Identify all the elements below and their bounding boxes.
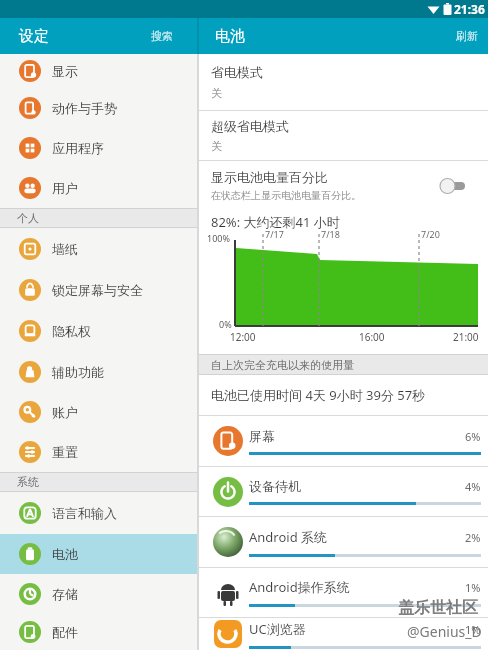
staticText: 省电模式 <box>211 64 263 80</box>
button[interactable]: 墙纸 <box>0 228 197 269</box>
staticText: 墙纸 <box>52 241 78 257</box>
staticText: 2% <box>465 530 481 545</box>
staticText: 自上次完全充电以来的使用量 <box>211 358 354 372</box>
staticText: 16:00 <box>359 330 385 344</box>
button[interactable]: 应用程序 <box>0 128 197 168</box>
staticText: 4% <box>465 479 481 494</box>
staticText: 电池 <box>52 546 78 562</box>
button[interactable]: 动作与手势 <box>0 88 197 128</box>
staticText: 在状态栏上显示电池电量百分比。 <box>211 189 361 202</box>
staticText: 1% <box>465 622 481 637</box>
staticText: 重置 <box>52 444 78 460</box>
button[interactable]: 超级省电模式 <box>199 111 488 160</box>
button[interactable]: 显示电池电量百分比 <box>199 161 488 210</box>
staticText: 7/18 <box>321 228 340 240</box>
button[interactable]: 隐私权 <box>0 310 197 351</box>
staticText: 系统 <box>17 475 39 489</box>
staticText: 电池已使用时间 4天 9小时 39分 57秒 <box>211 386 426 404</box>
button[interactable]: UC浏览器 <box>199 617 488 650</box>
button[interactable]: 语言和输入 <box>0 492 197 534</box>
button[interactable]: 屏幕 <box>199 415 488 466</box>
staticText: 7/20 <box>421 228 440 240</box>
staticText: 显示 <box>52 63 78 79</box>
staticText: Android 系统 <box>249 528 328 546</box>
staticText: 21:36 <box>454 1 485 17</box>
staticText: 个人 <box>17 211 39 225</box>
button[interactable]: 配件 <box>0 614 197 650</box>
button[interactable]: 设备待机 <box>199 466 488 516</box>
button[interactable]: 设定 <box>0 18 197 54</box>
button[interactable]: Android操作系统 <box>199 567 488 617</box>
staticText: 搜索 <box>151 29 173 43</box>
staticText: 账户 <box>52 404 78 420</box>
staticText: 6% <box>465 429 481 444</box>
button[interactable]: 电池 <box>0 534 197 574</box>
button[interactable]: 存储 <box>0 574 197 614</box>
staticText: 100% <box>207 232 230 244</box>
button[interactable]: 账户 <box>0 392 197 432</box>
staticText: 屏幕 <box>249 428 275 444</box>
staticText: 存储 <box>52 586 78 602</box>
staticText: 锁定屏幕与安全 <box>52 282 143 298</box>
staticText: 语言和输入 <box>52 505 117 521</box>
button[interactable]: 锁定屏幕与安全 <box>0 269 197 310</box>
staticText: 盖乐世社区 <box>398 598 478 618</box>
staticText: 超级省电模式 <box>211 118 289 134</box>
staticText: 82%: 大约还剩41 小时 <box>211 213 340 231</box>
button[interactable]: 省电模式 <box>199 54 488 110</box>
staticText: 0% <box>219 318 232 330</box>
staticText: 配件 <box>52 624 78 640</box>
staticText: @Genius_D <box>407 622 482 641</box>
staticText: 关 <box>211 139 222 153</box>
button[interactable]: Android 系统 <box>199 516 488 567</box>
staticText: 应用程序 <box>52 140 104 156</box>
staticText: 隐私权 <box>52 323 91 339</box>
staticText: 设定 <box>19 27 49 46</box>
staticText: 动作与手势 <box>52 100 117 116</box>
staticText: 用户 <box>52 180 78 196</box>
button[interactable]: 显示 <box>0 54 197 88</box>
button[interactable]: 刷新 <box>456 29 478 43</box>
staticText: 电池 <box>215 27 245 46</box>
button[interactable]: 用户 <box>0 168 197 208</box>
staticText: 21:00 <box>453 330 479 344</box>
staticText: 设备待机 <box>249 478 301 494</box>
button[interactable]: 重置 <box>0 432 197 472</box>
staticText: 1% <box>465 580 481 595</box>
staticText: Android操作系统 <box>249 578 350 596</box>
staticText: 7/17 <box>265 228 284 240</box>
staticText: 关 <box>211 86 222 100</box>
staticText: UC浏览器 <box>249 620 306 638</box>
button[interactable]: 辅助功能 <box>0 351 197 392</box>
staticText: 显示电池电量百分比 <box>211 169 328 185</box>
staticText: 辅助功能 <box>52 364 104 380</box>
staticText: 12:00 <box>230 330 256 344</box>
